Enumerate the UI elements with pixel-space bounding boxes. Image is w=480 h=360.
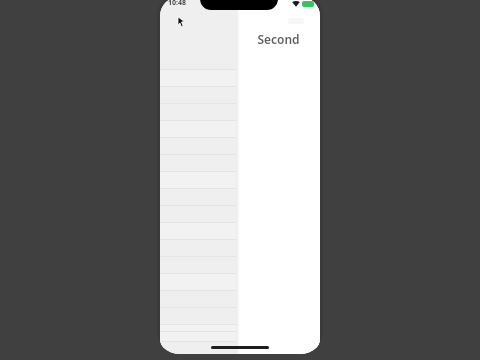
button[interactable]	[160, 121, 236, 138]
button[interactable]	[160, 223, 236, 240]
button[interactable]	[160, 172, 236, 189]
button[interactable]	[160, 325, 236, 342]
button[interactable]	[160, 274, 236, 291]
staticText: Second	[257, 31, 300, 47]
staticText: 10:48	[168, 0, 186, 8]
button[interactable]	[160, 70, 236, 87]
